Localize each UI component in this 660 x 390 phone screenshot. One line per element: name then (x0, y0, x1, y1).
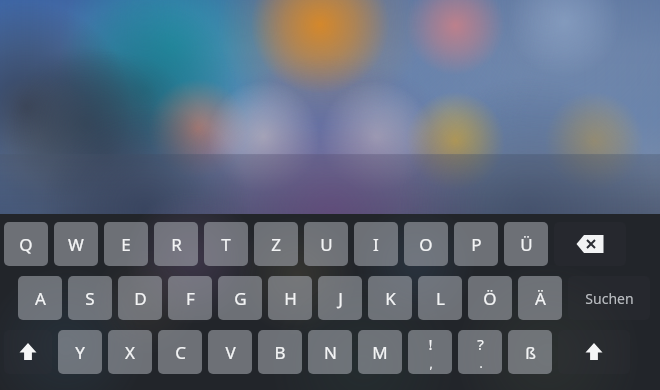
staticText: Z (271, 233, 281, 256)
button[interactable]: Suchen (568, 276, 650, 320)
button[interactable]: ? (458, 330, 502, 374)
staticText: D (134, 287, 147, 310)
staticText: ? (477, 334, 484, 354)
button[interactable]: Y (58, 330, 102, 374)
staticText: Suchen (585, 289, 634, 308)
staticText: G (234, 287, 247, 310)
staticText: V (225, 341, 236, 364)
button[interactable]: F (168, 276, 212, 320)
button[interactable]: R (154, 222, 198, 266)
staticText: ! (428, 334, 433, 354)
staticText: B (274, 341, 286, 364)
button[interactable]: Ö (468, 276, 512, 320)
staticText: N (324, 341, 337, 364)
staticText: H (284, 287, 297, 310)
button[interactable]: Shift (558, 330, 630, 374)
staticText: Q (19, 233, 33, 256)
staticText: U (320, 233, 333, 256)
button[interactable]: K (368, 276, 412, 320)
button[interactable]: G (218, 276, 262, 320)
staticText: Y (75, 341, 85, 364)
staticText: I (373, 233, 379, 256)
staticText: E (121, 233, 131, 256)
staticText: M (372, 341, 388, 364)
staticText: R (171, 233, 182, 256)
staticText: C (175, 341, 186, 364)
staticText: W (68, 233, 84, 256)
button[interactable]: W (54, 222, 98, 266)
button[interactable]: ß (508, 330, 552, 374)
button[interactable]: Shift (4, 330, 52, 374)
staticText: O (419, 233, 433, 256)
button[interactable]: N (308, 330, 352, 374)
button[interactable]: E (104, 222, 148, 266)
staticText: A (35, 287, 46, 310)
staticText: K (385, 287, 396, 310)
button[interactable]: M (358, 330, 402, 374)
button[interactable]: Q (4, 222, 48, 266)
button[interactable]: O (404, 222, 448, 266)
staticText: J (338, 287, 343, 310)
button[interactable]: J (318, 276, 362, 320)
button[interactable]: A (18, 276, 62, 320)
staticText: . (479, 355, 483, 371)
staticText: Ä (535, 287, 546, 310)
staticText: T (221, 233, 231, 256)
button[interactable]: U (304, 222, 348, 266)
staticText: S (85, 287, 95, 310)
button[interactable]: Z (254, 222, 298, 266)
staticText: F (186, 287, 195, 310)
button[interactable]: S (68, 276, 112, 320)
button[interactable]: I (354, 222, 398, 266)
staticText: Ö (483, 287, 497, 310)
button[interactable]: Backspace (554, 222, 626, 266)
button[interactable]: L (418, 276, 462, 320)
button[interactable]: B (258, 330, 302, 374)
button[interactable]: T (204, 222, 248, 266)
staticText: Ü (520, 233, 533, 256)
button[interactable]: Ü (504, 222, 548, 266)
button[interactable]: X (108, 330, 152, 374)
button[interactable]: Ä (518, 276, 562, 320)
button[interactable]: P (454, 222, 498, 266)
button[interactable]: C (158, 330, 202, 374)
button[interactable]: H (268, 276, 312, 320)
button[interactable]: ! (408, 330, 452, 374)
button[interactable]: V (208, 330, 252, 374)
staticText: L (436, 287, 445, 310)
staticText: X (125, 341, 135, 364)
button[interactable]: D (118, 276, 162, 320)
staticText: , (429, 355, 433, 371)
staticText: ß (525, 341, 536, 364)
staticText: P (471, 233, 482, 256)
